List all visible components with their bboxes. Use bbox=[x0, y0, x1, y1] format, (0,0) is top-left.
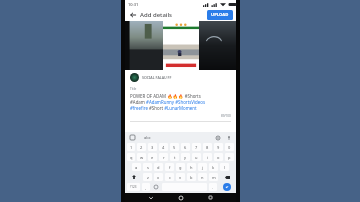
button[interactable]: 1 bbox=[127, 143, 135, 151]
button[interactable]: q bbox=[127, 153, 135, 161]
staticText: 10:31 bbox=[128, 2, 139, 7]
staticText: m bbox=[212, 175, 216, 180]
button[interactable]: l bbox=[220, 163, 229, 171]
button[interactable]: 7 bbox=[192, 143, 201, 151]
staticText: r bbox=[163, 155, 165, 160]
staticText: x bbox=[157, 175, 160, 180]
staticText: . bbox=[212, 185, 214, 190]
button[interactable]: 6 bbox=[181, 143, 190, 151]
button[interactable]: Shift bbox=[127, 173, 141, 181]
button[interactable]: j bbox=[198, 163, 207, 171]
staticText: t bbox=[174, 155, 176, 160]
button[interactable]: d bbox=[154, 163, 163, 171]
button[interactable]: h bbox=[187, 163, 196, 171]
button[interactable]: Voice input bbox=[225, 134, 232, 141]
button[interactable]: m bbox=[209, 173, 218, 181]
button[interactable]: . bbox=[209, 183, 217, 191]
staticText: 6 bbox=[184, 145, 187, 150]
button[interactable]: g bbox=[176, 163, 185, 171]
staticText: g bbox=[179, 165, 182, 170]
button[interactable]: Backspace bbox=[220, 173, 234, 181]
staticText: 2 bbox=[140, 145, 143, 150]
staticText: 8 bbox=[206, 145, 209, 150]
staticText: z bbox=[147, 175, 149, 180]
button[interactable]: 9 bbox=[214, 143, 223, 151]
staticText: POWER OF ADAM 🔥🔥🔥 #Shorts #Adam #AdamRun… bbox=[130, 93, 206, 111]
button[interactable]: ?123 bbox=[127, 183, 140, 191]
staticText: p bbox=[228, 155, 231, 160]
button[interactable]: a bbox=[132, 163, 141, 171]
staticText: f bbox=[169, 165, 171, 170]
button[interactable]: Recents bbox=[206, 193, 215, 202]
staticText: ?123 bbox=[130, 185, 137, 189]
staticText: s bbox=[147, 165, 149, 170]
staticText: u bbox=[195, 155, 198, 160]
staticText: i bbox=[207, 155, 209, 160]
button[interactable]: v bbox=[176, 173, 185, 181]
button[interactable]: w bbox=[137, 153, 146, 161]
button[interactable]: 8 bbox=[203, 143, 212, 151]
staticText: w bbox=[140, 155, 144, 160]
button[interactable]: GIF bbox=[129, 134, 136, 141]
staticText: 5 bbox=[173, 145, 176, 150]
staticText: 89/100 bbox=[221, 114, 231, 118]
button[interactable]: c bbox=[165, 173, 174, 181]
button[interactable]: p bbox=[225, 153, 234, 161]
staticText: o bbox=[217, 155, 220, 160]
button[interactable]: z bbox=[143, 173, 152, 181]
button[interactable]: n bbox=[198, 173, 207, 181]
button[interactable]: , bbox=[142, 183, 150, 191]
button[interactable]: t bbox=[170, 153, 179, 161]
button[interactable]: k bbox=[209, 163, 218, 171]
staticText: Add details bbox=[140, 11, 172, 19]
staticText: b bbox=[190, 175, 193, 180]
staticText: 9 bbox=[217, 145, 220, 150]
staticText: j bbox=[202, 165, 204, 170]
button[interactable]: Emoji bbox=[152, 183, 160, 191]
staticText: , bbox=[145, 185, 147, 190]
button[interactable]: i bbox=[203, 153, 212, 161]
staticText: v bbox=[179, 175, 182, 180]
button[interactable]: e bbox=[148, 153, 157, 161]
staticText: abc bbox=[144, 135, 151, 140]
staticText: q bbox=[130, 155, 133, 160]
staticText: d bbox=[157, 165, 160, 170]
staticText: SOCIAL FALAU FF bbox=[142, 75, 172, 80]
button[interactable]: 3 bbox=[148, 143, 157, 151]
button[interactable]: Home bbox=[176, 193, 185, 202]
staticText: c bbox=[169, 175, 171, 180]
button[interactable]: f bbox=[165, 163, 174, 171]
button[interactable]: x bbox=[154, 173, 163, 181]
button[interactable]: 0 bbox=[225, 143, 234, 151]
staticText: h bbox=[190, 165, 193, 170]
button[interactable]: UPLOAD bbox=[207, 10, 233, 20]
button[interactable]: Hide keyboard bbox=[146, 193, 155, 202]
staticText: n bbox=[201, 175, 204, 180]
staticText: 7 bbox=[195, 145, 198, 150]
staticText: UPLOAD bbox=[211, 12, 229, 18]
button[interactable]: SOCIAL FALAU FF bbox=[130, 73, 172, 82]
button[interactable]: b bbox=[187, 173, 196, 181]
staticText: e bbox=[151, 155, 154, 160]
button[interactable]: 4 bbox=[159, 143, 168, 151]
button[interactable]: y bbox=[181, 153, 190, 161]
button[interactable]: Back bbox=[128, 10, 138, 20]
button[interactable]: s bbox=[143, 163, 152, 171]
button[interactable]: 2 bbox=[137, 143, 146, 151]
staticText: 1 bbox=[130, 145, 133, 150]
staticText: k bbox=[212, 165, 215, 170]
staticText: Title bbox=[130, 87, 137, 91]
staticText: l bbox=[224, 165, 226, 170]
button[interactable]: Settings bbox=[214, 134, 221, 141]
button[interactable]: 5 bbox=[170, 143, 179, 151]
button[interactable]: u bbox=[192, 153, 201, 161]
staticText: 4 bbox=[162, 145, 165, 150]
staticText: a bbox=[135, 165, 138, 170]
button[interactable]: o bbox=[214, 153, 223, 161]
button[interactable]: abc bbox=[142, 135, 153, 140]
button[interactable]: Enter bbox=[223, 183, 231, 191]
staticText: 3 bbox=[151, 145, 154, 150]
staticText: y bbox=[184, 155, 187, 160]
button[interactable]: r bbox=[159, 153, 168, 161]
